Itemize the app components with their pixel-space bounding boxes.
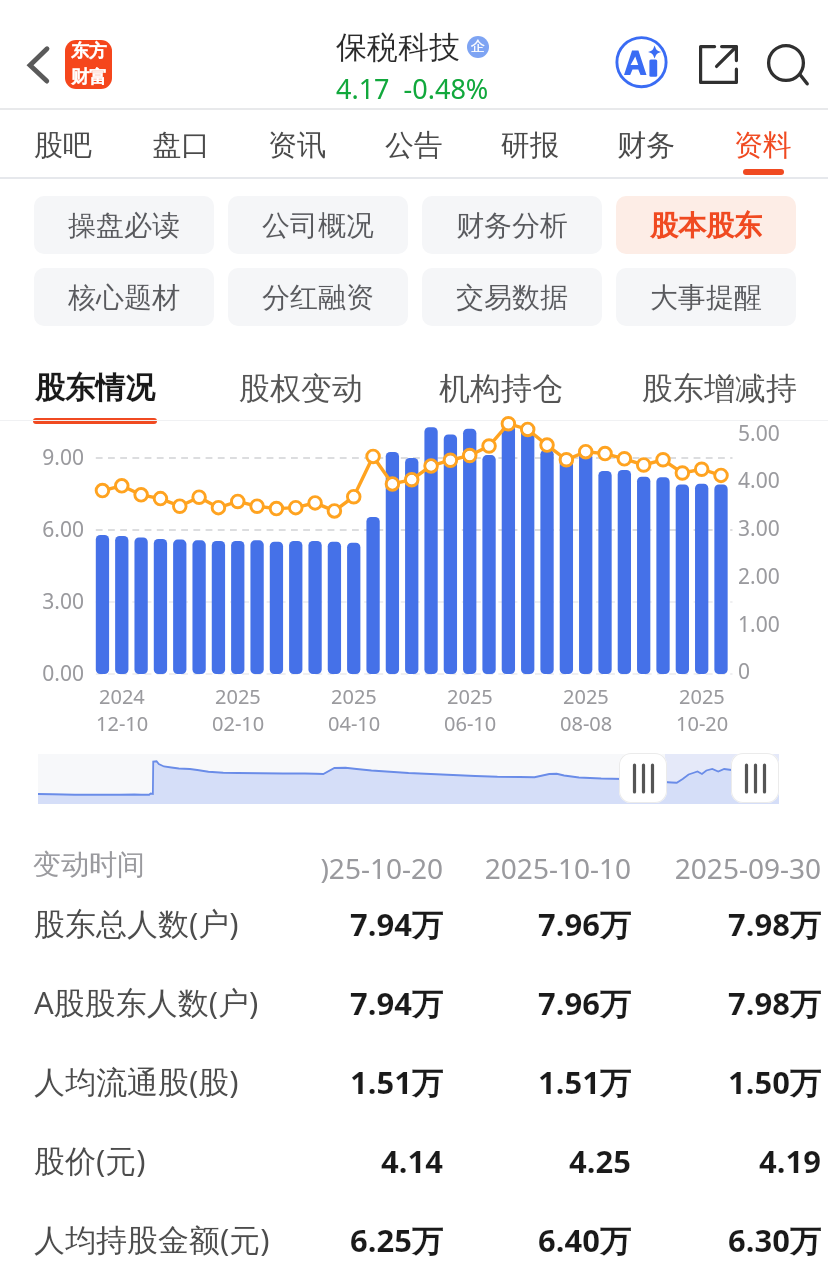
staticText: 08-08 (560, 710, 613, 737)
staticText: 公告 (385, 127, 443, 164)
staticText: 企 (471, 38, 485, 56)
staticText: 1.00 (738, 610, 780, 639)
staticText: 股东情况 (35, 369, 155, 407)
button[interactable]: 资讯 (239, 112, 355, 176)
staticText: 3.00 (738, 514, 780, 543)
staticText: 6.00 (14, 515, 84, 544)
button[interactable]: 公司概况 (228, 196, 408, 254)
staticText: 2025 (679, 683, 725, 710)
staticText: 7.98万 (621, 982, 821, 1024)
staticText: 4.14 (243, 1140, 443, 1182)
staticText: 2.00 (738, 562, 780, 591)
staticText: 股价(元) (34, 1139, 146, 1181)
button[interactable]: 股权变动 (206, 369, 396, 425)
button[interactable]: 财务 (588, 112, 704, 176)
staticText: 1.50万 (621, 1061, 821, 1103)
staticText: 6.25万 (243, 1219, 443, 1261)
button[interactable]: 股东情况 (0, 369, 190, 425)
staticText: 股本股东 (650, 208, 762, 243)
button[interactable]: Back (8, 34, 70, 96)
staticText: 6.40万 (431, 1219, 631, 1261)
staticText: 研报 (501, 127, 559, 164)
staticText: 2025 (447, 683, 493, 710)
staticText: 4.19 (621, 1140, 821, 1182)
staticText: 机构持仓 (439, 369, 563, 408)
button[interactable]: 分红融资 (228, 268, 408, 326)
staticText: 1.51万 (243, 1061, 443, 1103)
staticText: 6.30万 (621, 1219, 821, 1261)
button[interactable]: 交易数据 (422, 268, 602, 326)
staticText: 财务 (617, 127, 675, 164)
staticText: 大事提醒 (650, 280, 762, 315)
staticText: 0 (738, 657, 751, 686)
button[interactable]: 操盘必读 (34, 196, 214, 254)
staticText: 分红融资 (262, 280, 374, 315)
staticText: 3.00 (14, 587, 84, 616)
staticText: 0.00 (14, 659, 84, 688)
staticText: 7.94万 (243, 982, 443, 1024)
button[interactable]: 股本股东 (616, 196, 796, 254)
staticText: 保税科技 (336, 28, 460, 67)
button[interactable]: 机构持仓 (406, 369, 596, 425)
button[interactable]: Right range handle (731, 753, 779, 803)
staticText: )25-10-20 (243, 849, 443, 887)
button[interactable]: 资料 (705, 112, 821, 176)
button[interactable]: Left range handle (619, 753, 667, 803)
staticText: 公司概况 (262, 208, 374, 243)
staticText: 04-10 (328, 710, 381, 737)
staticText: 东方 (71, 40, 107, 63)
staticText: 7.98万 (621, 903, 821, 945)
staticText: 盘口 (152, 127, 210, 164)
button[interactable]: 公告 (356, 112, 472, 176)
staticText: 4.25 (431, 1140, 631, 1182)
button[interactable]: 盘口 (123, 112, 239, 176)
staticText: 股东增减持 (642, 369, 797, 408)
staticText: 02-10 (212, 710, 265, 737)
staticText: 股吧 (34, 127, 92, 164)
button[interactable]: 研报 (472, 112, 588, 176)
staticText: 2025-09-30 (621, 849, 821, 887)
button[interactable]: 股东增减持 (624, 369, 814, 425)
staticText: 操盘必读 (68, 208, 180, 243)
staticText: 股东总人数(户) (34, 902, 239, 944)
staticText: 财富 (71, 66, 107, 89)
staticText: 06-10 (444, 710, 497, 737)
staticText: 10-20 (676, 710, 729, 737)
staticText: 资料 (734, 127, 792, 164)
staticText: 4.00 (738, 466, 780, 495)
staticText: 财务分析 (456, 208, 568, 243)
button[interactable]: 股吧 (5, 112, 121, 176)
staticText: 变动时间 (33, 847, 145, 882)
staticText: 2025 (563, 683, 609, 710)
staticText: 9.00 (14, 443, 84, 472)
staticText: 2025-10-10 (431, 849, 631, 887)
staticText: 2025 (331, 683, 377, 710)
button[interactable]: AI assistant (613, 33, 672, 92)
staticText: 交易数据 (456, 280, 568, 315)
staticText: 资讯 (268, 127, 326, 164)
staticText: 7.96万 (431, 982, 631, 1024)
staticText: 4.17 -0.48% (336, 70, 489, 107)
staticText: A股股东人数(户) (34, 981, 259, 1023)
staticText: 2024 (99, 683, 145, 710)
button[interactable]: Search (758, 35, 814, 91)
button[interactable]: 核心题材 (34, 268, 214, 326)
staticText: 12-10 (96, 710, 149, 737)
staticText: 人均持股金额(元) (34, 1218, 270, 1260)
staticText: 核心题材 (68, 280, 180, 315)
button[interactable]: Share (690, 36, 746, 92)
staticText: 人均流通股(股) (34, 1060, 239, 1102)
button[interactable]: 财务分析 (422, 196, 602, 254)
staticText: 5.00 (738, 419, 780, 448)
button[interactable]: East Money (65, 40, 112, 89)
staticText: 1.51万 (431, 1061, 631, 1103)
staticText: 7.96万 (431, 903, 631, 945)
staticText: 2025 (215, 683, 261, 710)
staticText: 股权变动 (239, 369, 363, 408)
button[interactable]: 大事提醒 (616, 268, 796, 326)
staticText: 7.94万 (243, 903, 443, 945)
